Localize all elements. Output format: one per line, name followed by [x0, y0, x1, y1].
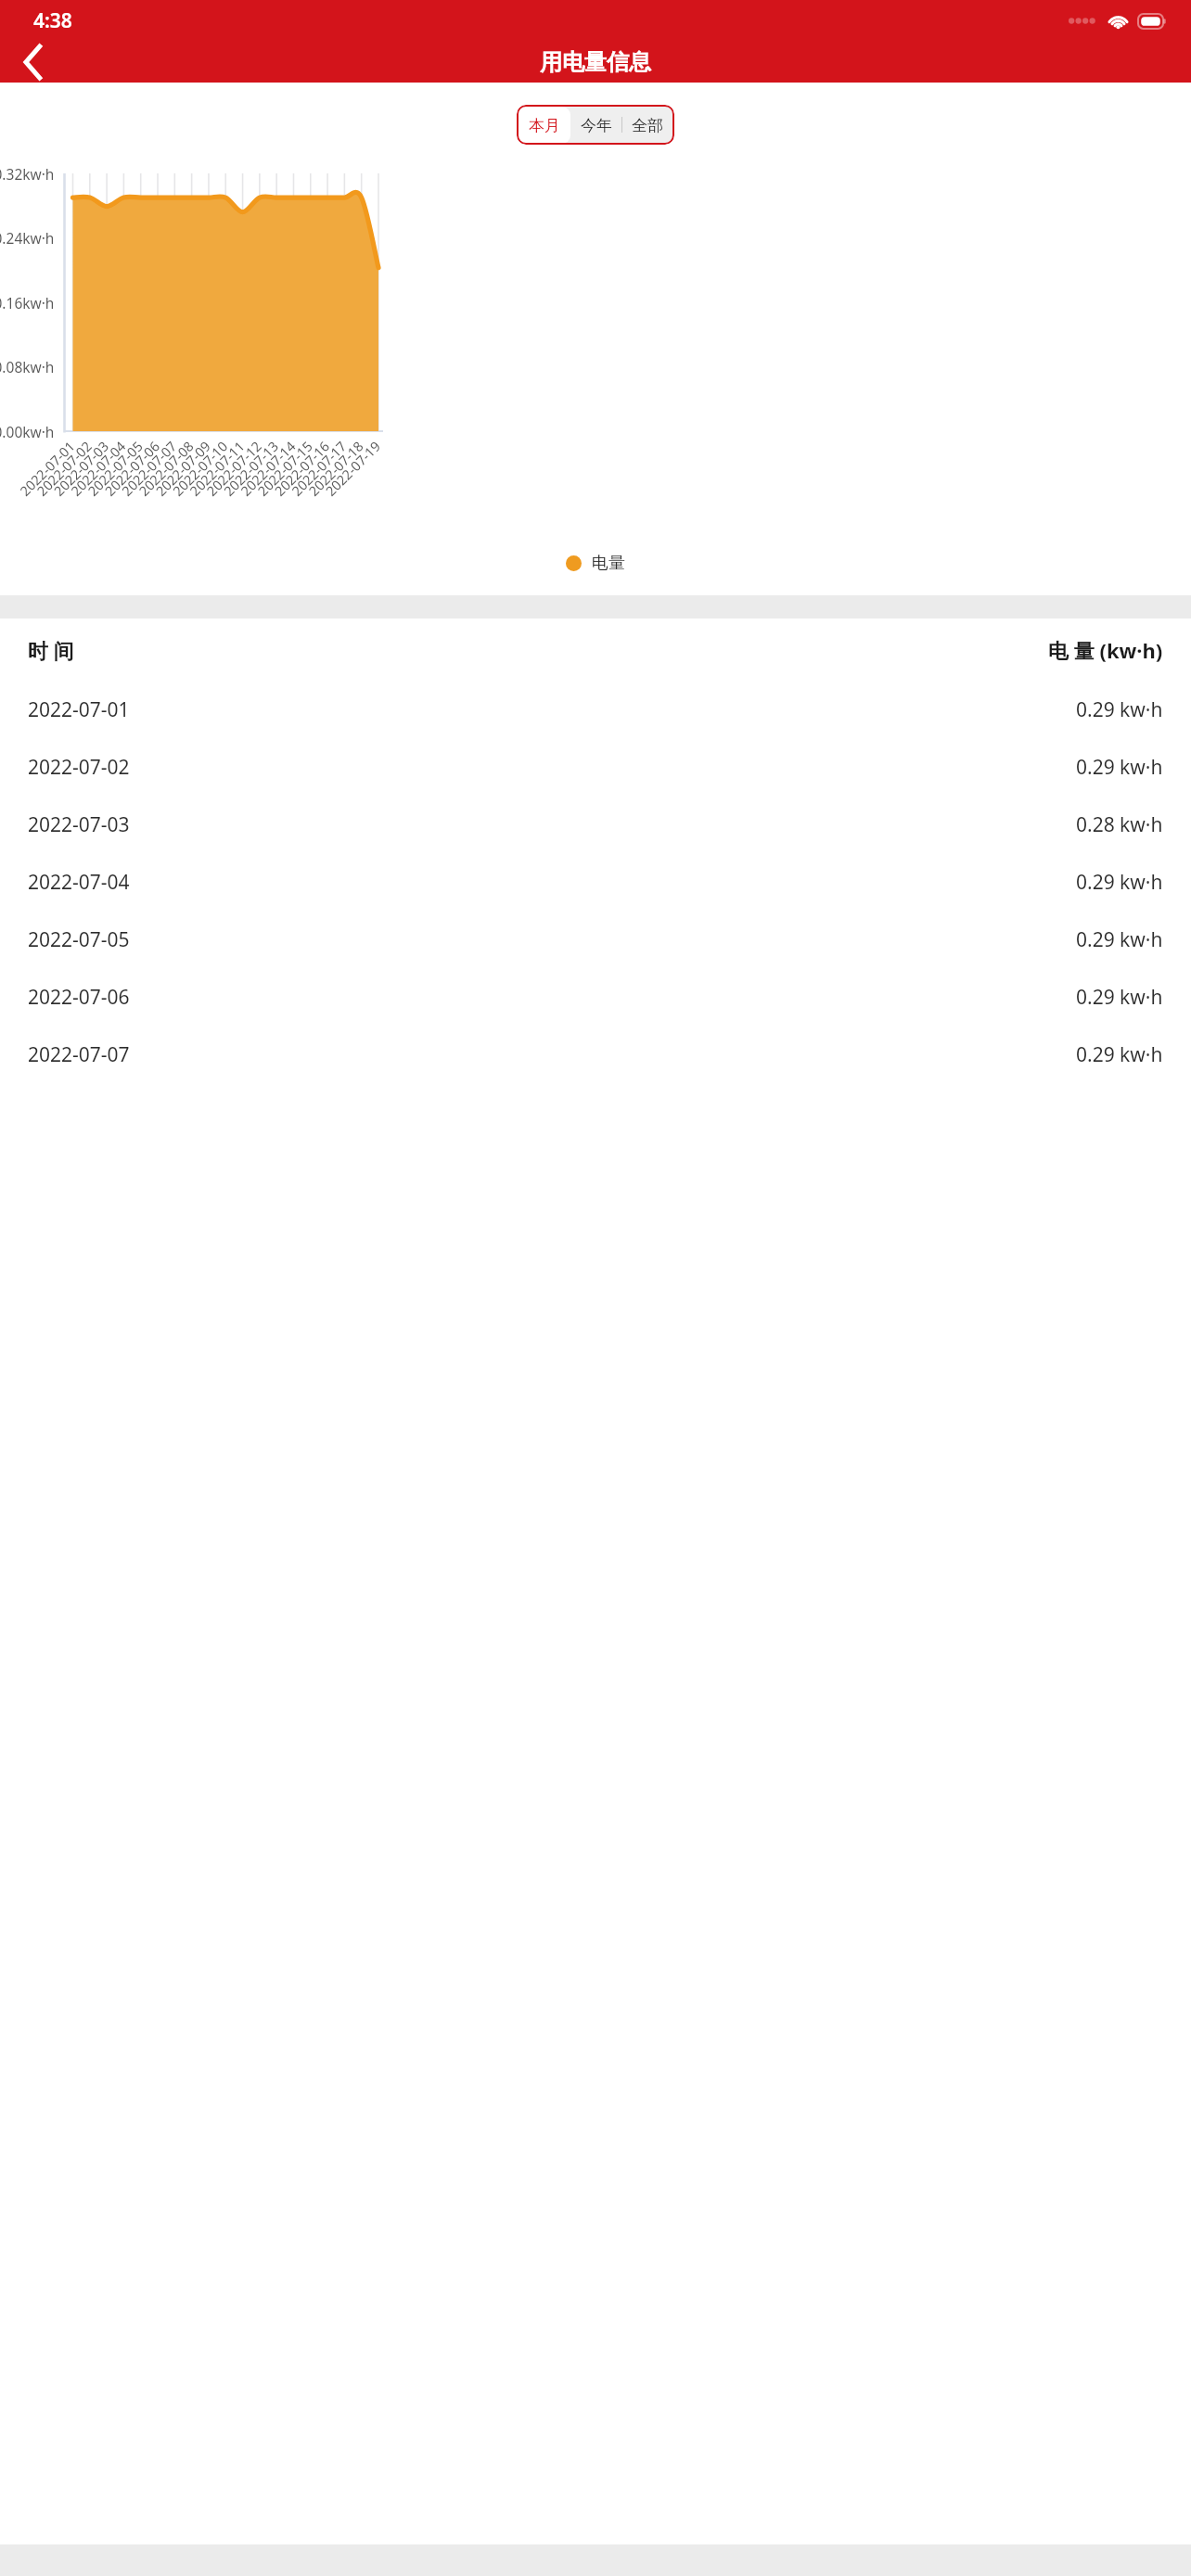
- button[interactable]: 本月: [518, 107, 570, 144]
- button[interactable]: 2022-07-03: [0, 796, 1191, 853]
- button[interactable]: 2022-07-04: [0, 853, 1191, 911]
- staticText: 2022-07-03: [28, 811, 130, 838]
- staticText: 2022-07-02: [28, 754, 130, 781]
- button[interactable]: Back: [0, 42, 65, 83]
- staticText: 2022-07-01: [28, 696, 130, 723]
- button[interactable]: 2022-07-05: [0, 911, 1191, 968]
- staticText: 电量: [592, 553, 625, 574]
- staticText: 0.29 kw·h: [1076, 754, 1163, 781]
- staticText: 4:38: [33, 7, 72, 34]
- staticText: 0.29 kw·h: [1076, 984, 1163, 1011]
- staticText: 时 间: [28, 636, 74, 664]
- staticText: 2022-07-04: [28, 869, 130, 896]
- button[interactable]: 2022-07-06: [0, 968, 1191, 1026]
- button[interactable]: 全部: [622, 107, 672, 144]
- button[interactable]: 今年: [570, 107, 621, 144]
- staticText: 0.29 kw·h: [1076, 1041, 1163, 1068]
- staticText: 0.28 kw·h: [1076, 811, 1163, 838]
- button[interactable]: 2022-07-01: [0, 681, 1191, 738]
- staticText: 用电量信息: [540, 48, 651, 76]
- staticText: 0.29 kw·h: [1076, 696, 1163, 723]
- staticText: 电 量 (kw·h): [1048, 636, 1163, 664]
- staticText: 今年: [581, 116, 612, 135]
- button[interactable]: 2022-07-02: [0, 738, 1191, 796]
- staticText: 0.29 kw·h: [1076, 926, 1163, 953]
- staticText: 0.29 kw·h: [1076, 869, 1163, 896]
- staticText: 本月: [529, 116, 560, 135]
- staticText: 2022-07-05: [28, 926, 130, 953]
- staticText: 2022-07-07: [28, 1041, 130, 1068]
- staticText: 2022-07-06: [28, 984, 130, 1011]
- button[interactable]: 2022-07-07: [0, 1026, 1191, 1083]
- staticText: 全部: [632, 116, 663, 135]
